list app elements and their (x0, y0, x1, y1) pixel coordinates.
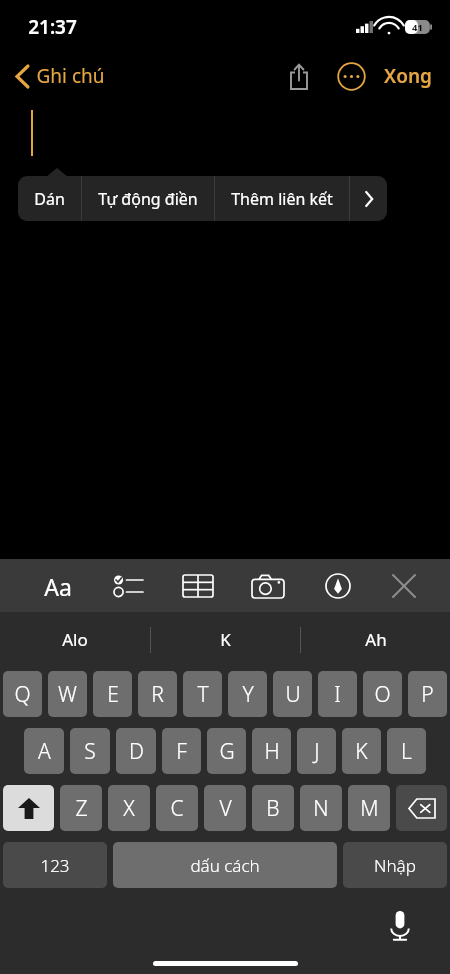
button[interactable]: X (108, 785, 150, 831)
button[interactable]: B (252, 785, 294, 831)
button[interactable]: Checklist (102, 564, 154, 608)
staticText: Dán (34, 188, 65, 210)
button[interactable]: N (300, 785, 342, 831)
staticText: S (84, 737, 96, 766)
button[interactable]: Table (172, 564, 224, 608)
button[interactable]: L (387, 728, 426, 774)
button[interactable]: D (116, 728, 156, 774)
button[interactable]: Q (3, 671, 42, 717)
staticText: B (266, 794, 280, 823)
staticText: Z (75, 794, 88, 823)
staticText: Tự động điền (98, 188, 198, 210)
staticText: Y (242, 680, 254, 709)
staticText: 21:37 (28, 14, 77, 40)
button[interactable]: Thêm liên kết (215, 176, 349, 221)
button[interactable]: P (408, 671, 447, 717)
button[interactable]: F (162, 728, 201, 774)
button[interactable]: Text format (32, 564, 84, 608)
button[interactable]: E (93, 671, 132, 717)
button[interactable]: Camera (242, 564, 294, 608)
button[interactable]: R (138, 671, 177, 717)
staticText: Q (14, 680, 31, 709)
button[interactable]: W (48, 671, 87, 717)
staticText: H (264, 737, 280, 766)
staticText: K (220, 628, 231, 651)
staticText: V (219, 794, 232, 823)
staticText: U (285, 680, 301, 709)
button[interactable]: 123 (3, 842, 107, 888)
staticText: J (314, 737, 320, 766)
button[interactable]: Shift (3, 785, 54, 831)
button[interactable]: More (350, 176, 387, 221)
staticText: Aa (44, 571, 72, 602)
button[interactable]: O (363, 671, 402, 717)
button[interactable]: Ghi chú (10, 57, 111, 95)
staticText: Ghi chú (36, 63, 105, 89)
button[interactable]: M (348, 785, 390, 831)
staticText: Alo (62, 628, 88, 651)
button[interactable]: Ah (301, 612, 450, 667)
button[interactable]: Tự động điền (82, 176, 214, 221)
staticText: T (197, 680, 209, 709)
staticText: dấu cách (190, 854, 260, 877)
button[interactable]: K (151, 612, 300, 667)
staticText: R (151, 680, 164, 709)
staticText: G (219, 737, 235, 766)
staticText: 123 (40, 854, 70, 877)
staticText: Ah (365, 628, 387, 651)
staticText: A (38, 737, 51, 766)
staticText: 41 (412, 21, 423, 34)
staticText: F (176, 737, 187, 766)
button[interactable]: Dictate (378, 904, 422, 948)
button[interactable]: Z (60, 785, 102, 831)
button[interactable]: J (297, 728, 336, 774)
staticText: I (334, 680, 341, 709)
staticText: X (123, 794, 135, 823)
button[interactable]: U (273, 671, 312, 717)
staticText: Thêm liên kết (231, 188, 333, 210)
staticText: Xong (384, 63, 432, 89)
staticText: E (107, 680, 119, 709)
staticText: Nhập (374, 854, 416, 877)
button[interactable]: dấu cách (113, 842, 337, 888)
staticText: O (374, 680, 391, 709)
staticText: P (421, 680, 434, 709)
button[interactable]: S (70, 728, 110, 774)
button[interactable]: H (252, 728, 291, 774)
button[interactable]: C (156, 785, 198, 831)
button[interactable]: Close keyboard (378, 564, 430, 608)
staticText: K (355, 737, 368, 766)
button[interactable]: Alo (0, 612, 150, 667)
button[interactable]: A (24, 728, 64, 774)
button[interactable]: More options (330, 55, 372, 97)
staticText: C (170, 794, 184, 823)
button[interactable]: Y (228, 671, 267, 717)
button[interactable]: T (183, 671, 222, 717)
staticText: M (360, 794, 379, 823)
staticText: N (313, 794, 329, 823)
button[interactable]: Backspace (396, 785, 447, 831)
button[interactable]: Nhập (343, 842, 447, 888)
button[interactable]: V (204, 785, 246, 831)
button[interactable]: K (342, 728, 381, 774)
staticText: L (401, 737, 412, 766)
button[interactable]: Dán (18, 176, 81, 221)
button[interactable]: Markup (312, 564, 364, 608)
button[interactable]: Xong (378, 55, 438, 97)
staticText: W (58, 680, 77, 709)
button[interactable]: G (207, 728, 246, 774)
button[interactable]: I (318, 671, 357, 717)
staticText: D (129, 737, 144, 766)
button[interactable]: Share (278, 55, 320, 97)
